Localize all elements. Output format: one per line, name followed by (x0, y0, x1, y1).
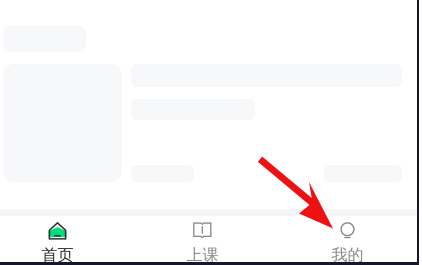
button[interactable]: 首页 (0, 216, 127, 265)
staticText: 我的 (331, 245, 363, 265)
button[interactable]: 我的 (278, 216, 417, 265)
button[interactable]: 上课 (133, 216, 272, 265)
staticText: 上课 (186, 245, 218, 265)
staticText: 首页 (41, 245, 73, 265)
